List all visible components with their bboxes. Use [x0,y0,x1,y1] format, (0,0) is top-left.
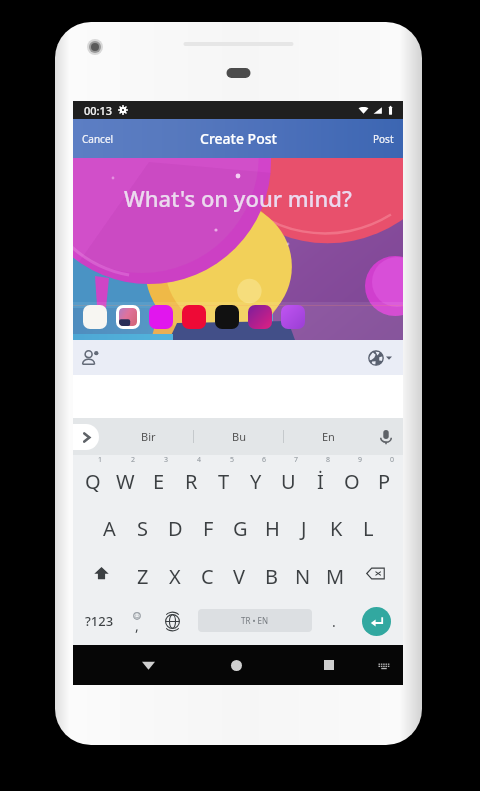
button[interactable]: Shift [76,549,126,597]
button[interactable]: Emoji and comma [123,597,151,645]
staticText: A [103,515,116,542]
staticText: 2 [131,455,136,465]
staticText: 4 [197,455,202,465]
button[interactable]: Background colour [248,305,272,329]
button[interactable]: Background colour [281,305,305,329]
staticText: R [185,468,198,495]
staticText: L [363,515,374,542]
staticText: En [322,429,335,444]
button[interactable]: V [223,549,255,597]
staticText: S [137,515,148,542]
button[interactable]: Post [364,119,403,158]
staticText: 6 [262,455,267,465]
button[interactable]: C [191,549,223,597]
staticText: G [233,515,248,542]
button[interactable]: Backspace [351,549,400,597]
button[interactable]: 6 [240,455,272,502]
button[interactable]: 1 [76,455,109,502]
button[interactable]: Background colour [83,305,107,329]
button[interactable]: Z [126,549,159,597]
staticText: J [301,515,307,542]
staticText: 8 [326,455,331,465]
button[interactable]: Bu [194,418,283,455]
button[interactable]: J [288,502,320,549]
staticText: Post [373,132,394,146]
button[interactable]: N [287,549,319,597]
staticText: TR • EN [241,615,269,626]
button[interactable]: Home [221,645,251,685]
button[interactable]: 8 [304,455,336,502]
staticText: P [378,468,391,495]
button[interactable]: Bir [103,418,193,455]
button[interactable]: . [320,597,348,645]
button[interactable]: 2 [109,455,142,502]
button[interactable]: Switch keyboard [370,645,398,685]
staticText: Cancel [82,132,114,146]
staticText: 1 [98,455,103,465]
staticText: V [233,563,245,590]
staticText: H [265,515,280,542]
staticText: İ [317,468,324,495]
staticText: Bir [141,429,156,444]
button[interactable]: ?123 [77,597,121,645]
staticText: W [116,468,135,495]
button[interactable]: Audience: Public [364,346,396,370]
button[interactable]: 7 [272,455,304,502]
button[interactable]: Cancel [73,119,123,158]
button[interactable]: A [93,502,126,549]
staticText: O [344,468,360,495]
button[interactable]: Expand toolbar [73,424,99,450]
staticText: 7 [294,455,299,465]
button[interactable]: 4 [175,455,208,502]
button[interactable]: Space [198,609,312,632]
button[interactable]: 5 [208,455,240,502]
button[interactable]: Background colour [182,305,206,329]
staticText: 00:13 [84,103,113,118]
button[interactable]: Voice input [378,429,394,445]
button[interactable]: G [224,502,256,549]
staticText: 5 [230,455,235,465]
button[interactable]: M [319,549,351,597]
button[interactable]: Back [133,645,163,685]
staticText: 0 [390,455,395,465]
staticText: B [265,563,278,590]
button[interactable]: Change language [158,597,186,645]
staticText: Bu [232,429,246,444]
button[interactable]: F [192,502,224,549]
staticText: K [330,515,343,542]
staticText: , [135,616,139,635]
staticText: E [153,468,165,495]
button[interactable]: Enter [362,607,391,636]
staticText: What's on your mind? [124,183,352,213]
staticText: 3 [164,455,169,465]
button[interactable]: Background colour [149,305,173,329]
staticText: N [295,563,311,590]
staticText: . [332,612,336,631]
staticText: T [218,468,230,495]
staticText: F [203,515,214,542]
button[interactable]: 0 [368,455,400,502]
staticText: Q [85,468,101,495]
button[interactable]: B [255,549,287,597]
button[interactable]: H [256,502,288,549]
button[interactable]: Recents [314,645,344,685]
button[interactable]: En [284,418,373,455]
button[interactable]: Tag people [79,346,103,370]
staticText: X [169,563,181,590]
staticText: Z [137,563,149,590]
staticText: ?123 [85,612,114,630]
staticText: 9 [358,455,363,465]
button[interactable]: K [320,502,352,549]
button[interactable]: 3 [142,455,175,502]
button[interactable]: X [159,549,191,597]
staticText: M [326,563,345,590]
button[interactable]: L [352,502,384,549]
button[interactable]: 9 [336,455,368,502]
button[interactable]: D [159,502,192,549]
staticText: U [281,468,296,495]
staticText: Create Post [200,129,277,148]
button[interactable]: Background colour [215,305,239,329]
staticText: Y [250,468,262,495]
button[interactable]: S [126,502,159,549]
button[interactable]: Choose photo background [116,305,140,329]
